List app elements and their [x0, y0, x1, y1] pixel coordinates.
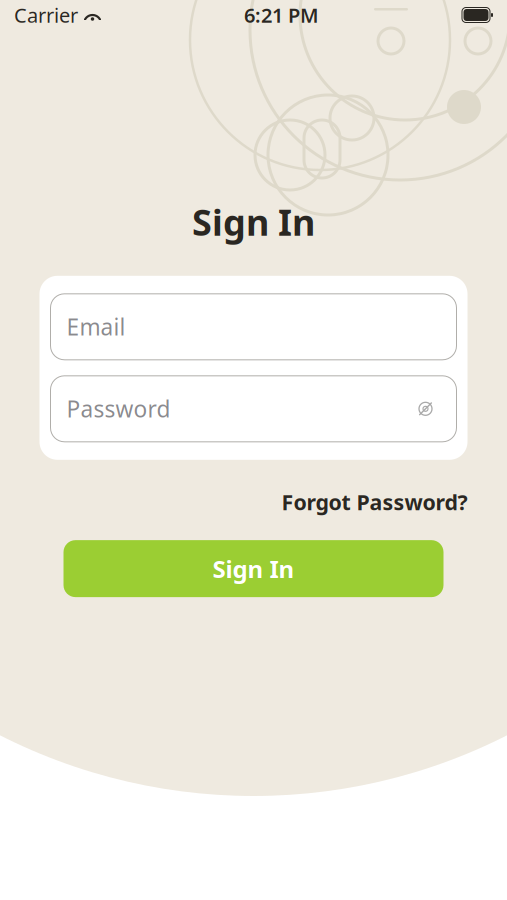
button[interactable]: Forgot Password?	[281, 482, 467, 522]
staticText: Password	[66, 394, 170, 424]
staticText: Sign In	[212, 553, 294, 585]
staticText: 6:21 PM	[244, 2, 319, 28]
staticText: Sign In	[192, 198, 315, 246]
staticText: Carrier	[14, 2, 78, 28]
staticText: Forgot Password?	[281, 488, 467, 516]
button[interactable]: Show password	[410, 394, 440, 424]
staticText: Email	[66, 312, 125, 342]
button[interactable]: Sign In	[63, 540, 443, 597]
